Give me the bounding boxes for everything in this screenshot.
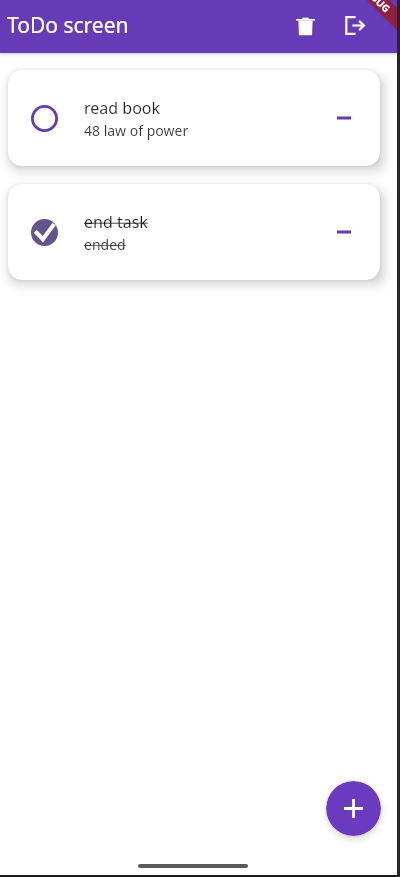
staticText: 48 law of power — [84, 121, 189, 140]
staticText: ended — [84, 235, 126, 254]
button[interactable]: Remove task — [322, 96, 366, 140]
button[interactable]: Mark incomplete — [8, 184, 380, 280]
button[interactable]: Mark complete — [8, 70, 380, 166]
button[interactable]: Delete all — [284, 5, 328, 49]
button[interactable]: Add task — [326, 781, 381, 836]
staticText: read book — [84, 97, 161, 119]
button[interactable]: Mark complete — [21, 96, 65, 140]
staticText: end task — [84, 211, 148, 233]
staticText: ToDo screen — [7, 11, 129, 40]
staticText: DEBUG — [359, 0, 394, 16]
button[interactable]: Log out — [332, 5, 376, 49]
button[interactable]: Remove task — [322, 210, 366, 254]
button[interactable]: Mark incomplete — [21, 210, 65, 254]
